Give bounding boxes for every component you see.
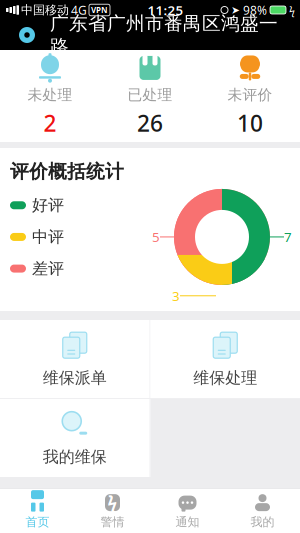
staticText: 中评 <box>32 227 64 247</box>
staticText: 5 <box>152 228 160 246</box>
staticText: 差评 <box>32 259 64 278</box>
button[interactable]: ϟ <box>75 489 150 533</box>
button[interactable]: 维保派单 <box>0 320 149 398</box>
staticText: VPN <box>91 5 108 15</box>
button[interactable]: 我的 <box>225 489 300 533</box>
staticText: 维保派单 <box>43 368 107 388</box>
staticText: 通知 <box>175 515 199 529</box>
staticText: 广东省广州市番禺区鸿盛一路 <box>50 12 278 58</box>
staticText: ϟ <box>107 491 117 514</box>
button[interactable]: Location <box>12 21 42 49</box>
staticText: 3 <box>172 287 180 305</box>
button[interactable]: 通知 <box>150 489 225 533</box>
staticText: 维保处理 <box>193 368 257 388</box>
staticText: 4G <box>71 2 87 18</box>
staticText: 未处理 <box>27 86 72 104</box>
staticText: 首页 <box>25 515 49 529</box>
staticText: 评价概括统计 <box>10 160 124 183</box>
button[interactable]: 我的维保 <box>0 399 149 477</box>
button[interactable]: 已处理 <box>100 50 200 142</box>
staticText: 10 <box>237 108 263 138</box>
staticText: 好评 <box>32 195 64 215</box>
button[interactable]: 维保处理 <box>150 320 300 398</box>
button[interactable]: 未处理 <box>0 50 100 142</box>
staticText: 7 <box>284 228 292 246</box>
staticText: ϟ <box>289 3 295 17</box>
staticText: 未评价 <box>227 86 272 104</box>
staticText: 11:25 <box>147 1 183 19</box>
staticText: 98% <box>243 2 267 18</box>
button[interactable]: 首页 <box>0 489 75 533</box>
staticText: 2 <box>43 108 56 138</box>
button[interactable]: 未评价 <box>200 50 300 142</box>
staticText: 我的维保 <box>43 447 107 467</box>
staticText: 中国移动 <box>21 3 69 17</box>
staticText: 已处理 <box>127 86 172 104</box>
staticText: 26 <box>137 108 163 138</box>
staticText: 警情 <box>100 515 124 529</box>
staticText: 我的 <box>250 515 274 529</box>
staticText: ➤ <box>231 4 240 16</box>
